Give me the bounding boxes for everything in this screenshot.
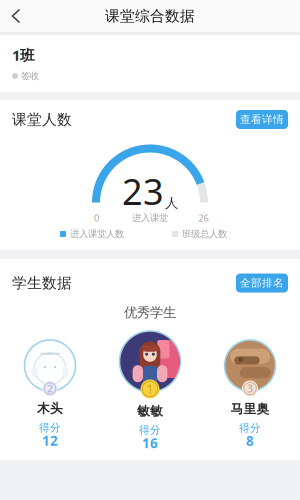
button[interactable]: Back (0, 0, 32, 32)
staticText: 16 (142, 434, 158, 452)
staticText: 人 (165, 195, 178, 211)
staticText: 3 (247, 381, 253, 396)
staticText: 得分 (39, 421, 61, 434)
button[interactable]: 查看详情 (236, 110, 288, 129)
button[interactable]: 3 (200, 331, 300, 447)
staticText: 得分 (239, 421, 261, 435)
staticText: 木头 (37, 401, 63, 417)
staticText: 进入课堂 (132, 212, 168, 224)
staticText: 班级总人数 (182, 228, 227, 240)
staticText: 签收 (21, 70, 39, 82)
staticText: 进入课堂人数 (70, 228, 124, 240)
staticText: 23 (122, 166, 164, 215)
button[interactable]: 1 (100, 331, 200, 449)
staticText: 学生数据 (12, 274, 72, 292)
staticText: 课堂综合数据 (105, 7, 195, 25)
staticText: 查看详情 (240, 113, 284, 126)
staticText: 敏敏 (137, 403, 163, 419)
staticText: 1 (146, 381, 153, 397)
staticText: 马里奥 (230, 401, 269, 417)
staticText: 12 (42, 431, 58, 450)
button[interactable]: 2 (0, 331, 100, 447)
staticText: 1班 (12, 45, 35, 65)
staticText: 8 (246, 432, 254, 450)
button[interactable]: 全部排名 (236, 273, 288, 292)
staticText: 26 (198, 212, 208, 224)
staticText: 0 (94, 212, 99, 224)
staticText: 全部排名 (240, 276, 284, 290)
staticText: 课堂人数 (12, 110, 72, 129)
staticText: 2 (47, 382, 52, 395)
staticText: 得分 (139, 423, 161, 437)
staticText: 优秀学生 (124, 304, 176, 321)
